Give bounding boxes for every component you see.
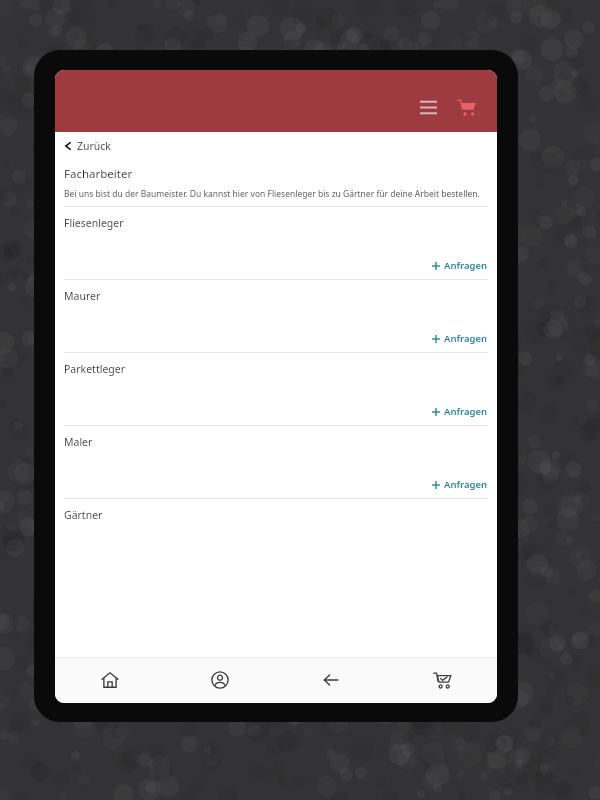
button[interactable]: Cart xyxy=(386,657,497,703)
button[interactable]: Zurück xyxy=(55,132,497,159)
staticText: Gärtner xyxy=(64,508,103,522)
staticText: Anfragen xyxy=(444,405,488,418)
button[interactable]: Anfragen xyxy=(432,478,488,491)
staticText: Anfragen xyxy=(444,478,488,491)
staticText: Bei uns bist du der Baumeister. Du kanns… xyxy=(64,188,480,200)
staticText: Zurück xyxy=(77,139,111,153)
button[interactable]: Profile xyxy=(165,657,275,703)
staticText: Anfragen xyxy=(444,332,488,345)
button[interactable]: Menu xyxy=(411,90,445,124)
button[interactable]: Shopping cart xyxy=(449,90,483,124)
button[interactable]: Maurer xyxy=(55,280,497,353)
button[interactable]: Home xyxy=(55,657,165,703)
button[interactable]: Anfragen xyxy=(432,332,488,345)
staticText: Parkettleger xyxy=(64,362,126,376)
button[interactable]: Fliesenleger xyxy=(55,207,497,280)
button[interactable]: Anfragen xyxy=(432,259,488,272)
button[interactable]: Parkettleger xyxy=(55,353,497,426)
staticText: Facharbeiter xyxy=(64,166,133,182)
staticText: Anfragen xyxy=(444,259,488,272)
staticText: Fliesenleger xyxy=(64,216,124,230)
button[interactable]: Maler xyxy=(55,426,497,499)
button[interactable]: Gärtner xyxy=(55,499,497,522)
staticText: Maler xyxy=(64,435,93,449)
staticText: Maurer xyxy=(64,289,101,303)
button[interactable]: Anfragen xyxy=(432,405,488,418)
button[interactable]: Back xyxy=(275,657,386,703)
